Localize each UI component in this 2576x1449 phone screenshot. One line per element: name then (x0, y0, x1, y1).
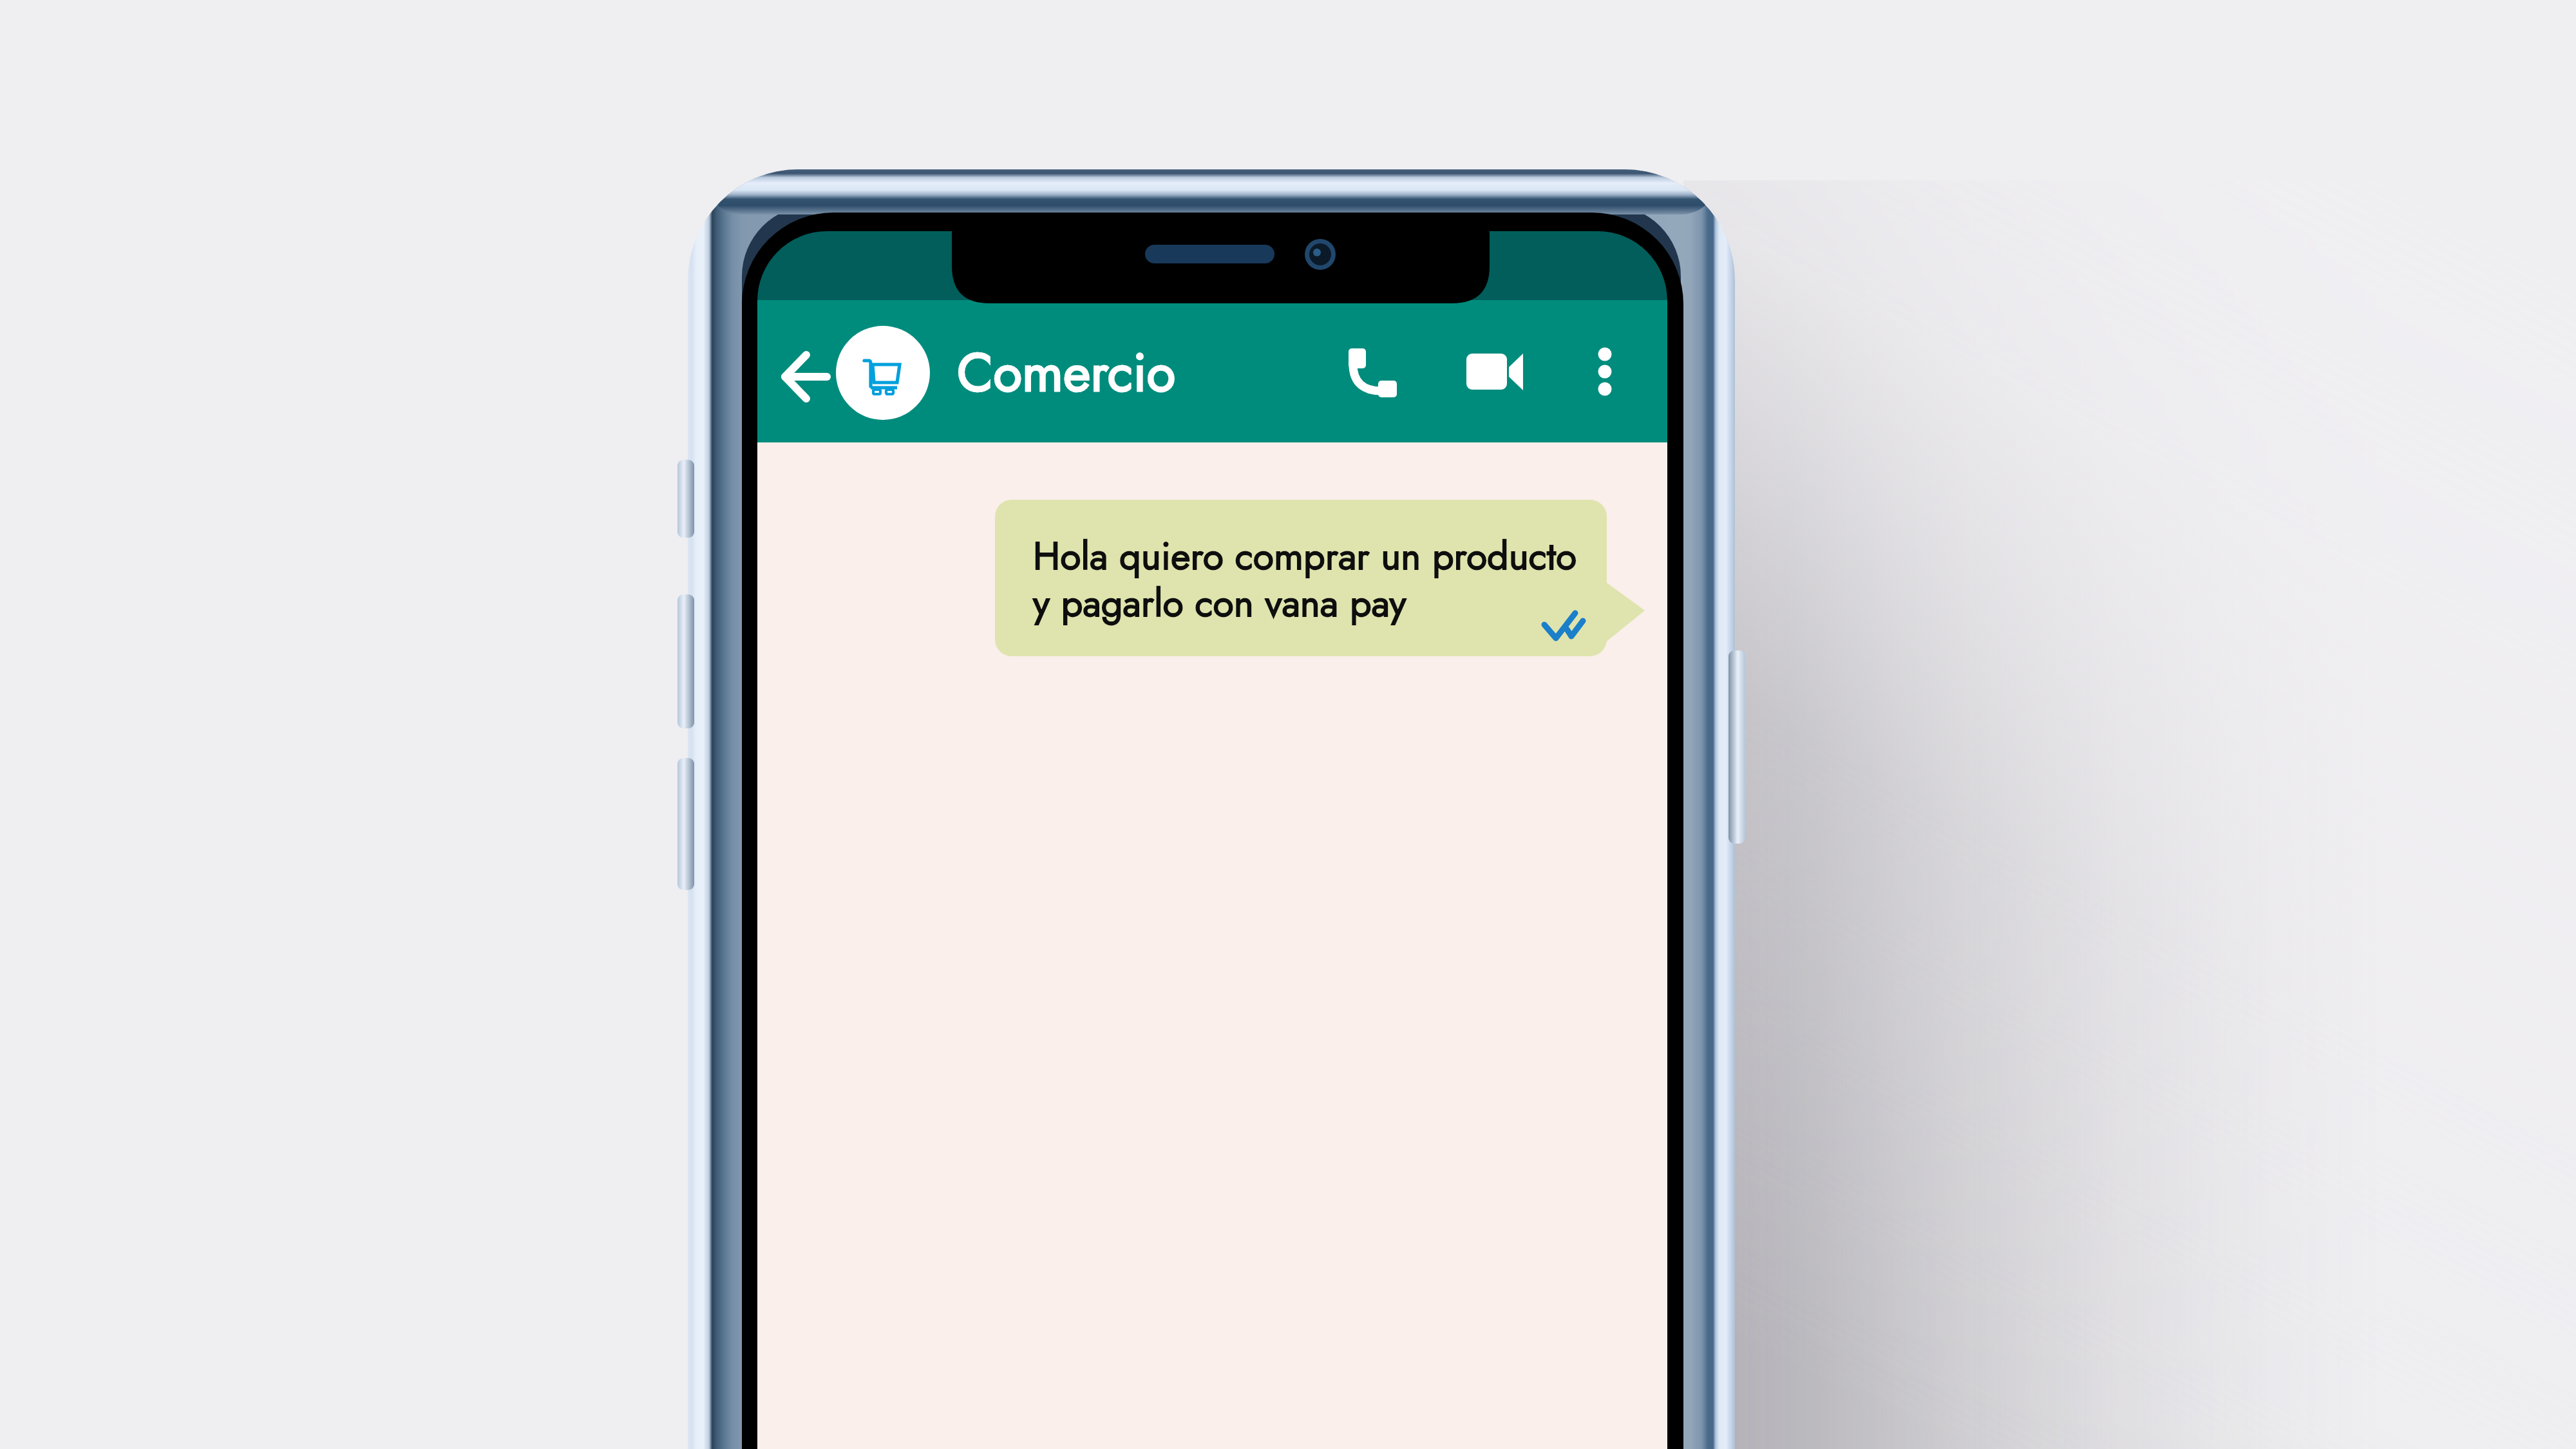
staticText: Comercio (957, 334, 1176, 410)
staticText: Hola quiero comprar un producto y pagarl… (1033, 535, 1577, 629)
button[interactable]: Video call (1459, 336, 1531, 408)
button[interactable]: More options (1569, 336, 1641, 408)
button[interactable]: Contact profile (836, 326, 930, 420)
button[interactable]: Voice call (1337, 336, 1409, 408)
button[interactable]: Back (770, 340, 841, 413)
